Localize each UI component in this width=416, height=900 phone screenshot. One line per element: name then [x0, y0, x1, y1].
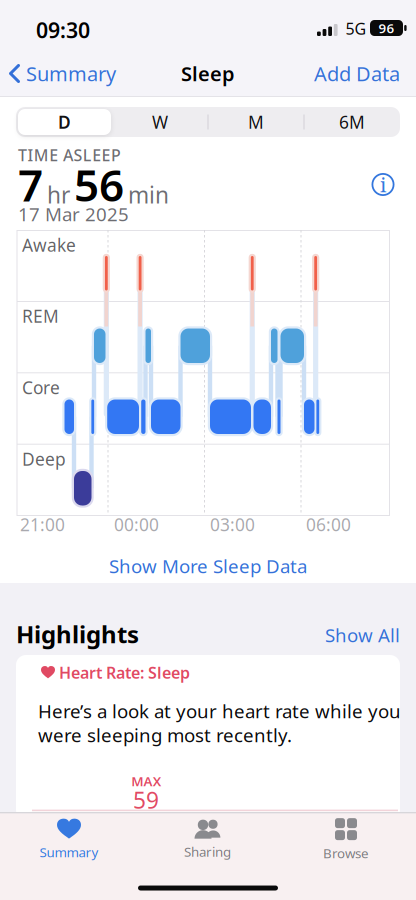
staticText: TIME ASLEEP: [18, 144, 121, 166]
staticText: D: [58, 110, 71, 133]
staticText: Summary: [39, 843, 98, 861]
staticText: Highlights: [16, 618, 139, 650]
staticText: Awake: [22, 233, 76, 256]
button[interactable]: More information: [368, 169, 398, 199]
staticText: Core: [22, 376, 60, 399]
staticText: Sleep: [181, 60, 235, 87]
staticText: min: [128, 180, 169, 210]
staticText: Summary: [26, 60, 116, 87]
staticText: 06:00: [306, 513, 351, 536]
button[interactable]: M: [209, 107, 303, 137]
staticText: Add Data: [314, 60, 400, 87]
button[interactable]: Heart Rate: Sleep: [16, 655, 400, 820]
staticText: 21:00: [20, 513, 65, 536]
button[interactable]: D: [17, 107, 111, 137]
staticText: Here’s a look at your heart rate while y…: [38, 699, 401, 723]
staticText: Show All: [325, 623, 400, 647]
staticText: M: [248, 110, 264, 133]
staticText: were sleeping most recently.: [38, 723, 292, 747]
button[interactable]: Sharing: [147, 812, 267, 868]
staticText: hr: [47, 180, 70, 210]
button[interactable]: Add Data: [250, 52, 400, 94]
staticText: REM: [22, 304, 59, 327]
button[interactable]: Show All: [280, 620, 400, 650]
staticText: 09:30: [36, 16, 90, 44]
staticText: 56: [74, 155, 124, 214]
staticText: Show More Sleep Data: [109, 554, 307, 578]
staticText: 03:00: [210, 513, 255, 536]
staticText: 00:00: [114, 513, 159, 536]
staticText: i: [380, 171, 386, 198]
staticText: W: [152, 110, 168, 133]
staticText: Heart Rate: Sleep: [59, 662, 190, 683]
button[interactable]: Summary: [9, 812, 129, 868]
staticText: MAX: [131, 772, 162, 790]
staticText: 59: [133, 785, 159, 815]
staticText: 5G: [345, 18, 366, 39]
button[interactable]: W: [113, 107, 207, 137]
staticText: 17 Mar 2025: [18, 202, 129, 226]
button[interactable]: Browse: [286, 812, 406, 868]
staticText: 7: [18, 155, 43, 214]
button[interactable]: Back: [8, 52, 188, 94]
button[interactable]: 6M: [305, 107, 399, 137]
staticText: 6M: [339, 110, 365, 133]
button[interactable]: Show More Sleep Data: [109, 548, 307, 584]
staticText: 96: [378, 19, 394, 37]
staticText: Browse: [323, 844, 369, 862]
staticText: Deep: [22, 447, 66, 470]
staticText: Sharing: [184, 843, 231, 860]
